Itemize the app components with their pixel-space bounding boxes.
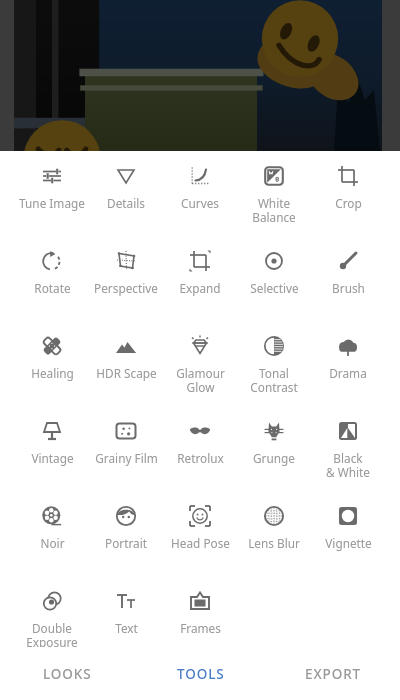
staticText: LOOKS bbox=[43, 665, 92, 683]
button[interactable]: Text bbox=[89, 576, 163, 647]
staticText: Grunge bbox=[253, 450, 295, 466]
button[interactable]: Tune Image bbox=[15, 151, 89, 236]
button[interactable]: White Balance bbox=[237, 151, 311, 236]
staticText: Grainy Film bbox=[95, 450, 158, 466]
staticText: Healing bbox=[31, 365, 74, 381]
button[interactable]: Healing bbox=[15, 321, 89, 406]
button[interactable]: Grainy Film bbox=[89, 406, 163, 491]
button[interactable]: TOOLS bbox=[134, 647, 267, 700]
staticText: Rotate bbox=[34, 280, 71, 296]
staticText: Portrait bbox=[105, 535, 147, 551]
staticText: Head Pose bbox=[171, 535, 230, 551]
staticText: Double Exposure bbox=[26, 620, 78, 647]
staticText: Vintage bbox=[31, 450, 74, 466]
staticText: Perspective bbox=[94, 280, 158, 296]
button[interactable]: HDR Scape bbox=[89, 321, 163, 406]
button[interactable]: Details bbox=[89, 151, 163, 236]
button[interactable]: Lens Blur bbox=[237, 491, 311, 576]
button[interactable]: Expand bbox=[163, 236, 237, 321]
button[interactable]: Double Exposure bbox=[15, 576, 89, 647]
button[interactable]: Tonal Contrast bbox=[237, 321, 311, 406]
button[interactable]: Selective bbox=[237, 236, 311, 321]
button[interactable]: LOOKS bbox=[0, 647, 134, 700]
staticText: Text bbox=[115, 620, 138, 636]
button[interactable]: Head Pose bbox=[163, 491, 237, 576]
button[interactable]: Rotate bbox=[15, 236, 89, 321]
staticText: Tune Image bbox=[19, 195, 85, 211]
staticText: Black & White bbox=[326, 450, 370, 481]
button[interactable]: Drama bbox=[311, 321, 385, 406]
button[interactable]: Crop bbox=[311, 151, 385, 236]
button[interactable]: Vignette bbox=[311, 491, 385, 576]
staticText: Selective bbox=[250, 280, 299, 296]
button[interactable]: Grunge bbox=[237, 406, 311, 491]
staticText: Details bbox=[107, 195, 145, 211]
button[interactable]: Curves bbox=[163, 151, 237, 236]
button[interactable]: EXPORT bbox=[267, 647, 400, 700]
staticText: TOOLS bbox=[177, 665, 225, 683]
button[interactable]: Brush bbox=[311, 236, 385, 321]
staticText: Tonal Contrast bbox=[250, 365, 298, 396]
staticText: Glamour Glow bbox=[176, 365, 225, 396]
button[interactable]: Vintage bbox=[15, 406, 89, 491]
staticText: Lens Blur bbox=[248, 535, 300, 551]
staticText: Retrolux bbox=[177, 450, 224, 466]
staticText: Drama bbox=[329, 365, 367, 381]
button[interactable]: Perspective bbox=[89, 236, 163, 321]
button[interactable]: Noir bbox=[15, 491, 89, 576]
staticText: HDR Scape bbox=[96, 365, 157, 381]
staticText: Curves bbox=[181, 195, 219, 211]
button[interactable]: Glamour Glow bbox=[163, 321, 237, 406]
staticText: Frames bbox=[180, 620, 221, 636]
staticText: Expand bbox=[179, 280, 221, 296]
button[interactable]: Frames bbox=[163, 576, 237, 647]
staticText: White Balance bbox=[252, 195, 296, 226]
button[interactable]: Portrait bbox=[89, 491, 163, 576]
staticText: Noir bbox=[40, 535, 65, 551]
button[interactable]: Black & White bbox=[311, 406, 385, 491]
staticText: Brush bbox=[332, 280, 365, 296]
staticText: Crop bbox=[335, 195, 362, 211]
button[interactable]: Retrolux bbox=[163, 406, 237, 491]
staticText: EXPORT bbox=[305, 665, 362, 683]
staticText: Vignette bbox=[325, 535, 372, 551]
